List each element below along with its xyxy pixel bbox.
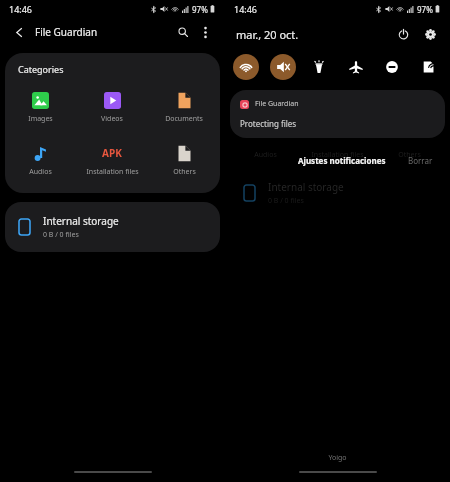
button[interactable]: Flashlight	[306, 54, 332, 80]
button[interactable]: Images	[5, 87, 76, 128]
button[interactable]: Videos	[76, 87, 148, 128]
staticText: Audios	[254, 150, 277, 160]
staticText: Others	[173, 167, 196, 177]
staticText: APK	[102, 146, 122, 160]
button[interactable]: Do not disturb	[379, 54, 405, 80]
staticText: Installation files	[86, 167, 139, 177]
staticText: Documents	[165, 114, 203, 124]
button[interactable]: NFC	[416, 54, 442, 80]
staticText: 97%	[417, 4, 433, 15]
button[interactable]: Documents	[148, 87, 220, 128]
staticText: File Guardian	[35, 25, 98, 39]
staticText: Categories	[18, 63, 64, 75]
button[interactable]: Search	[174, 23, 192, 41]
staticText: mar., 20 oct.	[236, 27, 299, 42]
staticText: Ajustes notificaciones	[298, 155, 386, 166]
staticText: Videos	[101, 114, 123, 124]
staticText: 14:46	[9, 3, 33, 15]
staticText: Internal storage	[43, 214, 119, 228]
button[interactable]: Borrar	[404, 151, 437, 170]
button[interactable]: Audios	[5, 140, 76, 181]
button[interactable]: File Guardian	[230, 90, 445, 138]
staticText: Yoigo	[225, 453, 450, 463]
button[interactable]: Wi-Fi	[233, 54, 259, 80]
staticText: Internal storage	[268, 180, 344, 194]
staticText: 97%	[192, 4, 208, 15]
staticText: File Guardian	[255, 99, 299, 109]
button[interactable]: Power	[394, 25, 412, 43]
staticText: Images	[28, 114, 53, 124]
staticText: Installation files	[311, 150, 364, 160]
staticText: Protecting files	[240, 118, 297, 129]
button[interactable]: Back	[11, 24, 27, 40]
button[interactable]: Internal storage	[5, 202, 220, 252]
button[interactable]: Airplane mode	[343, 54, 369, 80]
staticText: 14:46	[234, 3, 258, 15]
button[interactable]: Settings	[421, 25, 439, 43]
button[interactable]: Mute	[270, 54, 296, 80]
staticText: 0 B / 0 files	[268, 196, 304, 206]
button[interactable]: APK	[76, 140, 148, 181]
button[interactable]: Others	[148, 140, 220, 181]
staticText: Audios	[29, 167, 52, 177]
staticText: Others	[398, 150, 421, 160]
button[interactable]: Ajustes notificaciones	[294, 151, 390, 170]
staticText: Borrar	[408, 155, 433, 166]
staticText: 0 B / 0 files	[43, 230, 79, 240]
button[interactable]: More options	[196, 23, 214, 41]
